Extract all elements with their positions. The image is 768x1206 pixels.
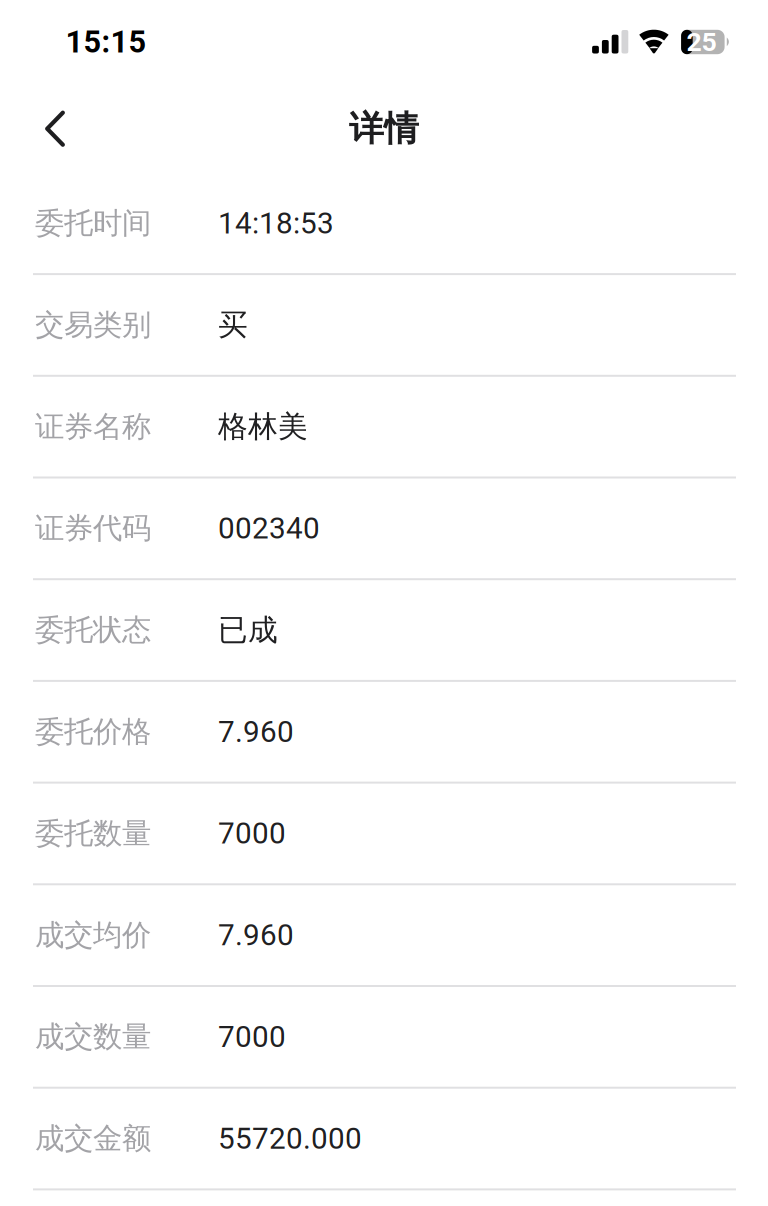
staticText: 证券名称 (35, 408, 151, 445)
staticText: 25 (687, 26, 717, 58)
staticText: 已成 (218, 611, 278, 649)
staticText: 成交均价 (35, 917, 151, 954)
staticText: 成交数量 (35, 1018, 151, 1055)
staticText: 14:18:53 (218, 206, 334, 241)
staticText: 002340 (218, 511, 320, 546)
staticText: 详情 (349, 107, 419, 151)
staticText: 证券代码 (35, 510, 151, 547)
staticText: 55720.000 (218, 1121, 362, 1156)
staticText: 15:15 (65, 24, 146, 60)
staticText: 成交金额 (35, 1120, 151, 1157)
staticText: 交易类别 (35, 306, 151, 343)
staticText: 买 (218, 306, 248, 344)
staticText: 委托状态 (35, 612, 151, 649)
button[interactable]: Back (0, 85, 99, 173)
staticText: 7.960 (218, 918, 294, 953)
staticText: 委托数量 (35, 815, 151, 852)
staticText: 委托价格 (35, 713, 151, 750)
staticText: 7.960 (218, 714, 294, 749)
staticText: 委托时间 (35, 205, 151, 242)
staticText: 7000 (218, 816, 286, 851)
staticText: 格林美 (218, 408, 308, 445)
staticText: 7000 (218, 1019, 286, 1054)
